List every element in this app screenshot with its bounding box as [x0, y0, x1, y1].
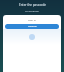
button[interactable]: Continue	[5, 24, 59, 29]
staticText: Continue	[28, 25, 37, 28]
staticText: to continue	[25, 9, 39, 12]
staticText: Enter the passcode	[19, 3, 46, 7]
staticText: Sign in	[28, 18, 36, 21]
